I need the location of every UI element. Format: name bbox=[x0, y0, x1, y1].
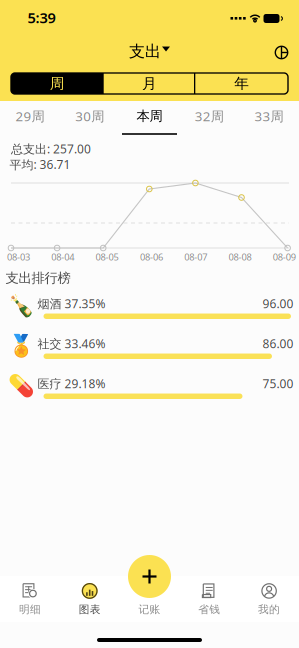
button[interactable]: Add record bbox=[128, 555, 171, 598]
staticText: 年 bbox=[234, 74, 249, 92]
staticText: 本周 bbox=[136, 108, 162, 124]
staticText: 支出排行榜 bbox=[5, 270, 70, 286]
button[interactable]: 周 bbox=[11, 73, 104, 94]
staticText: 08-07 bbox=[184, 251, 207, 263]
button[interactable]: 我的 bbox=[239, 576, 299, 622]
staticText: 平均: 36.71 bbox=[9, 156, 70, 172]
button[interactable]: 🍾 bbox=[0, 286, 299, 326]
button[interactable]: 💊 bbox=[0, 366, 299, 406]
staticText: 08-04 bbox=[51, 251, 74, 263]
staticText: 29周 bbox=[15, 107, 44, 125]
staticText: 08-05 bbox=[96, 251, 119, 263]
staticText: 32周 bbox=[195, 107, 224, 125]
button[interactable]: 🏅 bbox=[0, 326, 299, 366]
button[interactable]: 支出 bbox=[117, 36, 182, 67]
staticText: 省钱 bbox=[198, 603, 220, 616]
button[interactable]: 30周 bbox=[60, 103, 120, 137]
staticText: 75.00 bbox=[262, 375, 293, 391]
button[interactable]: 33周 bbox=[239, 103, 299, 137]
button[interactable]: 图表 bbox=[60, 576, 120, 622]
staticText: 30周 bbox=[75, 107, 104, 125]
staticText: 图表 bbox=[79, 603, 101, 616]
staticText: 支出 bbox=[129, 42, 161, 61]
staticText: 86.00 bbox=[262, 335, 293, 351]
staticText: 烟酒 37.35% bbox=[37, 295, 105, 311]
staticText: 明细 bbox=[19, 603, 41, 616]
button[interactable]: 明细 bbox=[0, 576, 60, 622]
staticText: 🍾 bbox=[7, 294, 34, 318]
button[interactable]: Chart style bbox=[267, 38, 296, 67]
button[interactable]: 月 bbox=[104, 73, 195, 94]
staticText: 社交 33.46% bbox=[37, 335, 105, 351]
staticText: 5:39 bbox=[27, 8, 55, 27]
staticText: 总支出: 257.00 bbox=[11, 141, 91, 157]
button[interactable]: 32周 bbox=[179, 103, 239, 137]
staticText: 记账 bbox=[138, 603, 160, 616]
staticText: 96.00 bbox=[262, 295, 293, 311]
button[interactable]: 年 bbox=[195, 73, 288, 94]
staticText: 月 bbox=[142, 74, 157, 92]
button[interactable]: 29周 bbox=[0, 103, 60, 137]
staticText: 33周 bbox=[255, 107, 284, 125]
staticText: 08-03 bbox=[7, 251, 30, 263]
staticText: 周 bbox=[50, 74, 65, 92]
button[interactable]: 本周 bbox=[120, 103, 179, 137]
staticText: 🏅 bbox=[7, 334, 34, 358]
staticText: 08-08 bbox=[228, 251, 251, 263]
staticText: 08-06 bbox=[140, 251, 163, 263]
staticText: 💊 bbox=[7, 374, 34, 398]
staticText: 我的 bbox=[258, 603, 280, 616]
staticText: 08-09 bbox=[273, 251, 296, 263]
staticText: 医疗 29.18% bbox=[37, 375, 105, 391]
button[interactable]: 省钱 bbox=[179, 576, 239, 622]
button[interactable]: 记账 bbox=[120, 576, 179, 622]
